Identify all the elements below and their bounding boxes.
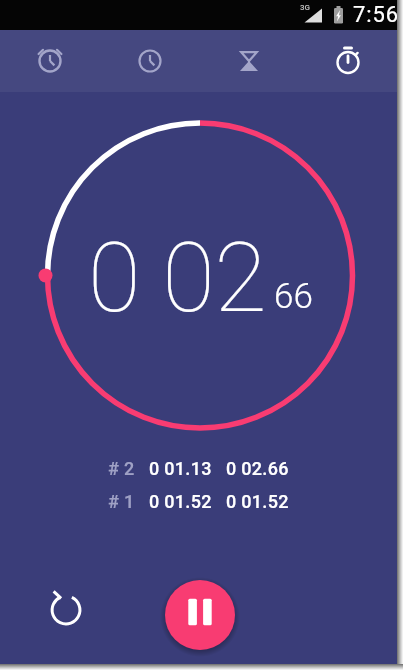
- button[interactable]: [298, 30, 397, 92]
- staticText: 0 02.66: [226, 458, 289, 479]
- staticText: 0 01.13: [149, 458, 212, 479]
- staticText: 3G: [300, 3, 310, 12]
- button[interactable]: [199, 30, 298, 92]
- staticText: # 1: [108, 491, 135, 512]
- staticText: 7:56: [353, 2, 400, 28]
- staticText: 0 01.52: [226, 491, 289, 512]
- button[interactable]: [100, 30, 199, 92]
- staticText: # 2: [108, 458, 135, 479]
- staticText: 66: [274, 276, 313, 317]
- staticText: 0 02: [88, 222, 267, 335]
- button[interactable]: [0, 30, 100, 92]
- button[interactable]: [165, 580, 235, 650]
- staticText: 0 01.52: [149, 491, 212, 512]
- button[interactable]: [36, 580, 96, 640]
